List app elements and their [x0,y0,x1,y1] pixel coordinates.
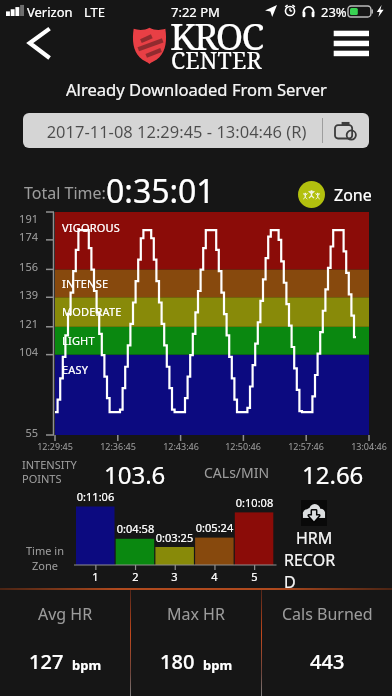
staticText: 13:04:46 [344,440,392,452]
staticText: Max HR [167,603,225,625]
staticText: 7:22 PM [171,3,220,21]
staticText: 0:35:01 [106,169,215,213]
staticText: POINTS [22,471,62,486]
staticText: 12:36:45 [93,440,143,452]
staticText: 12:57:46 [281,440,331,452]
button[interactable]: HRM Record [284,500,344,593]
staticText: 2017-11-08 12:29:45 - 13:04:46 (R) [27,120,326,142]
staticText: VIGOROUS [62,220,121,235]
button[interactable]: 2017-11-08 12:29:45 - 13:04:46 (R) [23,113,369,148]
staticText: 12:29:45 [30,440,80,452]
staticText: 443 [310,648,345,675]
staticText: Time in [26,543,64,558]
staticText: Avg HR [38,603,93,625]
staticText: RECORD [284,549,344,593]
staticText: Total Time: [24,182,106,204]
staticText: 191 [12,211,38,226]
staticText: 12:50:46 [218,440,268,452]
button[interactable]: Avg HR [0,590,130,696]
button[interactable]: Back [22,24,58,66]
staticText: 5 [235,569,274,584]
staticText: 2 [116,569,155,584]
staticText: Already Downloaded From Server [66,78,327,101]
staticText: 104 [12,344,38,359]
staticText: 121 [12,316,38,331]
staticText: HRM [296,527,333,549]
staticText: 1 [76,569,115,584]
staticText: 23% [321,3,347,21]
staticText: 0:10:08 [230,495,279,510]
button[interactable]: Cals Burned [262,590,392,696]
staticText: 103.6 [104,458,166,491]
staticText: 0:11:06 [71,489,120,504]
staticText: 12.66 [302,458,364,491]
staticText: 0:03:25 [150,530,199,545]
staticText: 156 [12,259,38,274]
staticText: 180 [160,648,195,675]
other: HRM Record [301,500,327,526]
staticText: CENTER [171,44,262,75]
button[interactable]: Max HR [131,590,261,696]
staticText: 127 [29,648,64,675]
staticText: bpm [203,656,233,674]
staticText: Verizon [27,3,73,21]
staticText: INTENSE [62,276,109,291]
staticText: 3 [155,569,194,584]
staticText: LIGHT [62,333,95,348]
staticText: bpm [72,656,102,674]
button[interactable]: Zone [298,181,372,208]
staticText: 55 [12,425,38,440]
staticText: 12:43:46 [156,440,206,452]
staticText: 4 [195,569,234,584]
staticText: INTENSITY [22,457,77,472]
staticText: EASY [62,362,89,377]
staticText: CALs/MIN [204,463,270,482]
staticText: MODERATE [62,304,122,319]
staticText: Zone [334,184,372,206]
staticText: 0:04:58 [111,521,160,536]
button[interactable]: Menu [330,26,372,64]
staticText: Zone [32,558,58,573]
staticText: Cals Burned [282,603,373,625]
staticText: 139 [12,287,38,302]
staticText: 174 [12,229,38,244]
staticText: KROC [170,10,263,56]
staticText: 0:05:24 [190,520,239,535]
staticText: LTE [84,3,106,21]
